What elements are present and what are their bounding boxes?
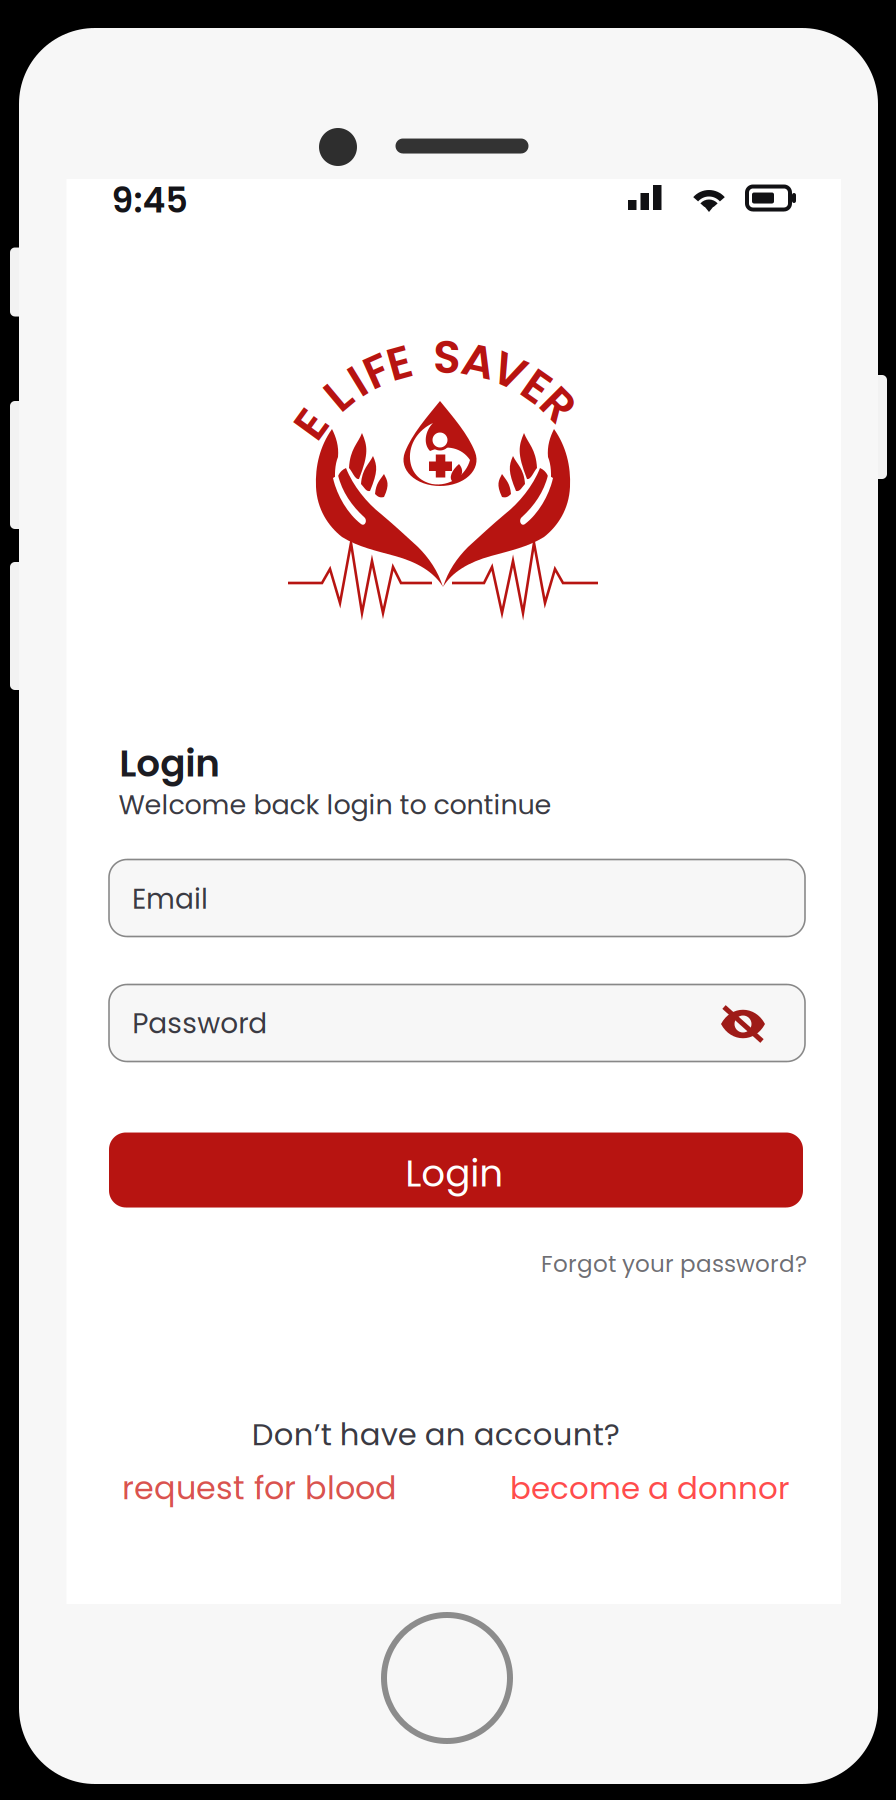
staticText: Email	[132, 879, 208, 918]
staticText: 9:45	[112, 176, 188, 225]
staticText: F	[365, 339, 389, 403]
staticText: become a donnor	[510, 1466, 790, 1510]
staticText: Welcome back login to continue	[118, 786, 551, 824]
staticText: Login	[119, 737, 220, 790]
staticText: I	[351, 349, 364, 413]
button[interactable]: Forgot your password?	[0, 0, 896, 1800]
staticText: A	[462, 329, 494, 393]
staticText: R	[544, 373, 573, 436]
staticText: Forgot your password?	[541, 1248, 807, 1280]
button[interactable]: Email	[0, 0, 896, 1800]
staticText: L	[328, 363, 349, 427]
staticText: Don’t have an account?	[252, 1413, 620, 1456]
staticText: Login	[405, 1147, 503, 1200]
staticText: E	[299, 392, 323, 456]
button[interactable]: Login	[0, 0, 896, 1800]
button[interactable]: request for blood	[0, 0, 896, 1800]
button[interactable]: become a donnor	[0, 0, 896, 1800]
staticText: E	[524, 355, 548, 418]
button[interactable]: Password	[0, 0, 896, 1800]
staticText: request for blood	[122, 1466, 397, 1510]
staticText: S	[433, 325, 461, 389]
staticText: Password	[132, 1004, 267, 1043]
staticText: E	[387, 331, 411, 395]
staticText: V	[493, 339, 525, 403]
